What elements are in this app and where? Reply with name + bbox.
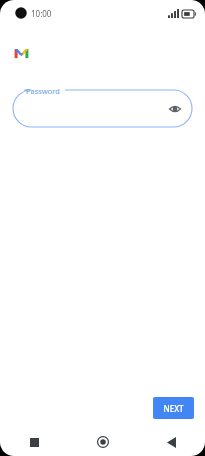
button[interactable]: Password: [13, 84, 192, 128]
staticText: NEXT: [163, 403, 184, 414]
button[interactable]: Home: [69, 428, 137, 456]
button[interactable]: Recent apps: [0, 428, 69, 456]
button[interactable]: Back: [137, 428, 205, 456]
button[interactable]: Show password: [167, 101, 183, 117]
button[interactable]: NEXT: [153, 397, 194, 419]
staticText: 10:00: [31, 8, 52, 19]
staticText: Password: [26, 86, 60, 96]
